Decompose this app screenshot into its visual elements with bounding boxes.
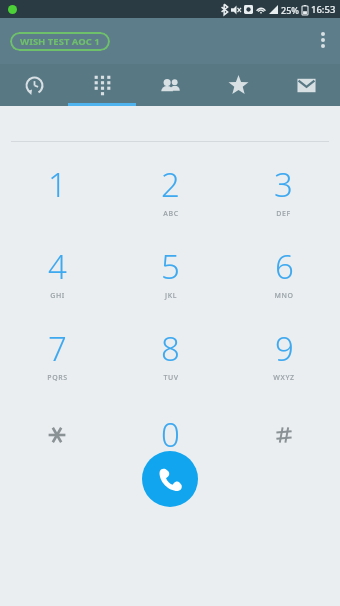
button[interactable]: WISH TEST AOC 1 bbox=[10, 32, 110, 51]
staticText: 25% bbox=[281, 4, 299, 16]
staticText: ABC bbox=[163, 209, 179, 219]
button[interactable]: Call history bbox=[0, 64, 68, 106]
staticText: 8 bbox=[161, 326, 180, 371]
staticText: 7 bbox=[48, 326, 67, 371]
staticText: 1 bbox=[48, 162, 67, 207]
staticText: 9 bbox=[275, 326, 294, 371]
button[interactable]: 4 bbox=[0, 231, 114, 313]
button[interactable]: Contacts bbox=[136, 64, 204, 106]
staticText: GHI bbox=[50, 291, 65, 301]
button[interactable]: 8 bbox=[114, 313, 227, 395]
button[interactable]: 9 bbox=[227, 313, 340, 395]
button[interactable]: Favourites bbox=[204, 64, 272, 106]
staticText: WISH TEST AOC 1 bbox=[20, 35, 100, 48]
button[interactable]: 6 bbox=[227, 231, 340, 313]
button[interactable]: 5 bbox=[114, 231, 227, 313]
staticText: 2 bbox=[161, 162, 180, 207]
button[interactable]: 7 bbox=[0, 313, 114, 395]
staticText: 16:53 bbox=[311, 3, 336, 16]
button[interactable]: Voicemail bbox=[272, 64, 340, 106]
staticText: 0 bbox=[161, 412, 180, 457]
button[interactable]: 1 bbox=[0, 149, 114, 231]
button[interactable] bbox=[0, 395, 114, 485]
staticText: TUV bbox=[163, 373, 179, 383]
staticText: 4 bbox=[48, 244, 67, 289]
button[interactable]: More options bbox=[306, 23, 340, 57]
staticText: 6 bbox=[275, 244, 294, 289]
staticText: WXYZ bbox=[273, 373, 295, 383]
button[interactable] bbox=[227, 395, 340, 485]
staticText: DEF bbox=[276, 209, 291, 219]
staticText: PQRS bbox=[47, 373, 68, 383]
staticText: 3 bbox=[274, 162, 293, 207]
button[interactable]: 0 bbox=[114, 395, 227, 485]
button[interactable]: 2 bbox=[114, 149, 227, 231]
button[interactable]: Dial pad bbox=[68, 64, 136, 106]
button[interactable]: 3 bbox=[227, 149, 340, 231]
button[interactable]: Call bbox=[142, 451, 198, 507]
staticText: JKL bbox=[165, 291, 177, 301]
staticText: MNO bbox=[274, 291, 294, 301]
staticText: 5 bbox=[161, 244, 180, 289]
